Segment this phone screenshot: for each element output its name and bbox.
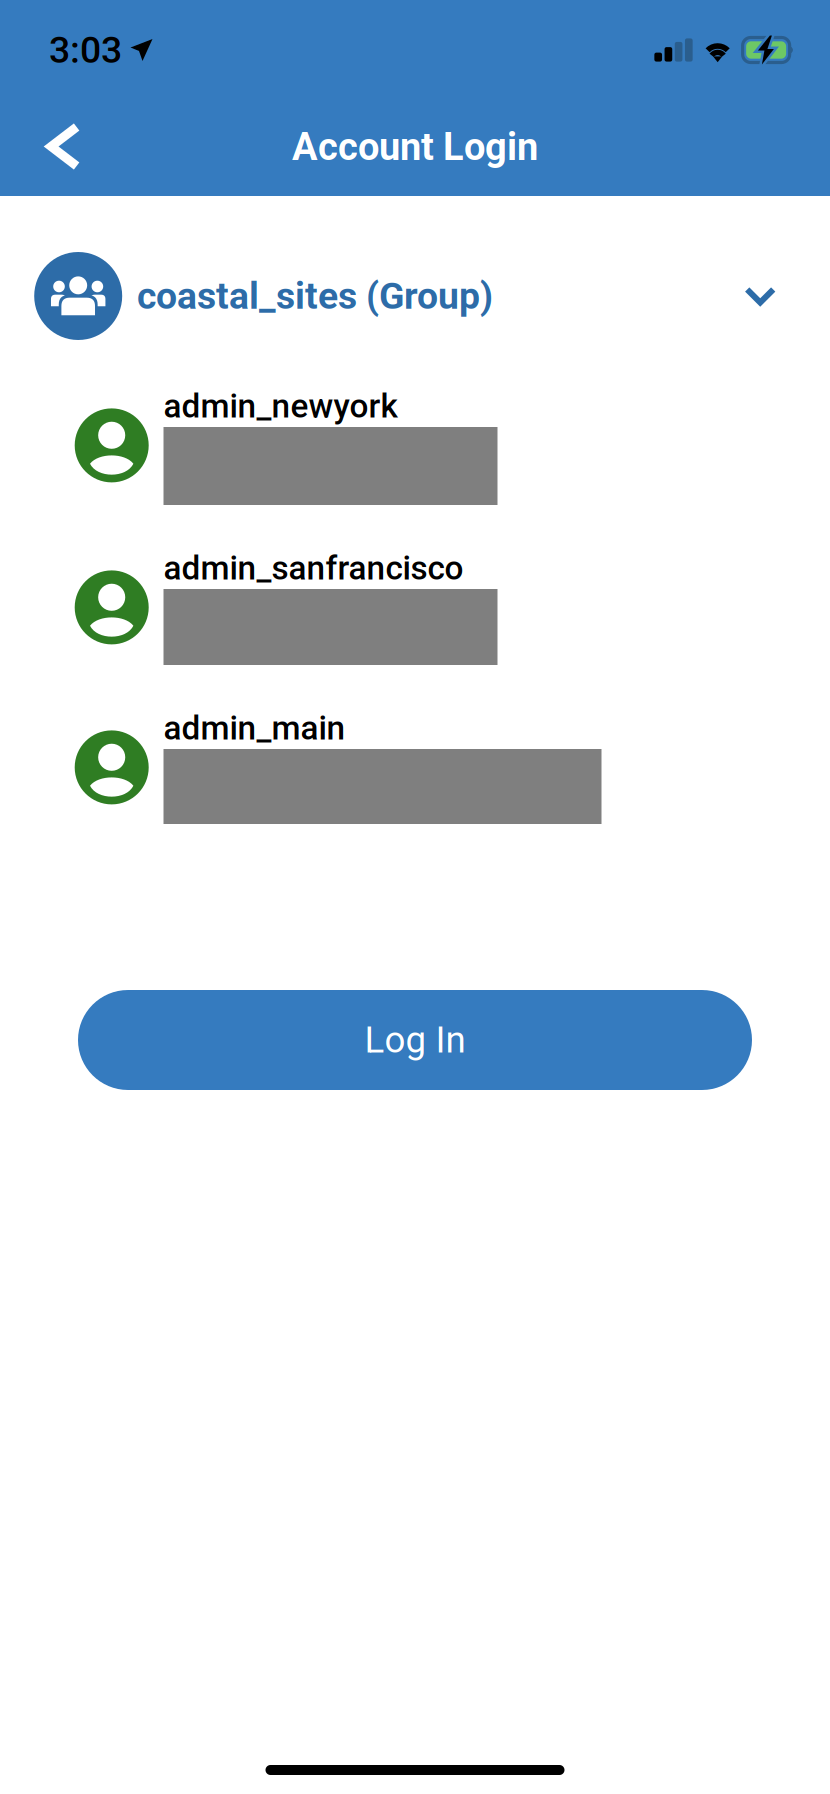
button[interactable]: admin_main: [0, 708, 830, 835]
staticText: admin_main: [163, 708, 345, 748]
staticText: admin_newyork: [163, 386, 397, 426]
staticText: admin_sanfrancisco: [163, 548, 463, 588]
button[interactable]: Log In: [78, 990, 752, 1090]
staticText: coastal_sites (Group): [137, 274, 493, 318]
staticText: Log In: [364, 1018, 465, 1061]
button[interactable]: admin_sanfrancisco: [0, 548, 830, 676]
button[interactable]: coastal_sites (Group): [0, 241, 830, 351]
staticText: Account Login: [292, 125, 538, 169]
button[interactable]: Back: [16, 98, 112, 194]
staticText: 3:03: [49, 28, 122, 72]
button[interactable]: admin_newyork: [0, 386, 830, 516]
